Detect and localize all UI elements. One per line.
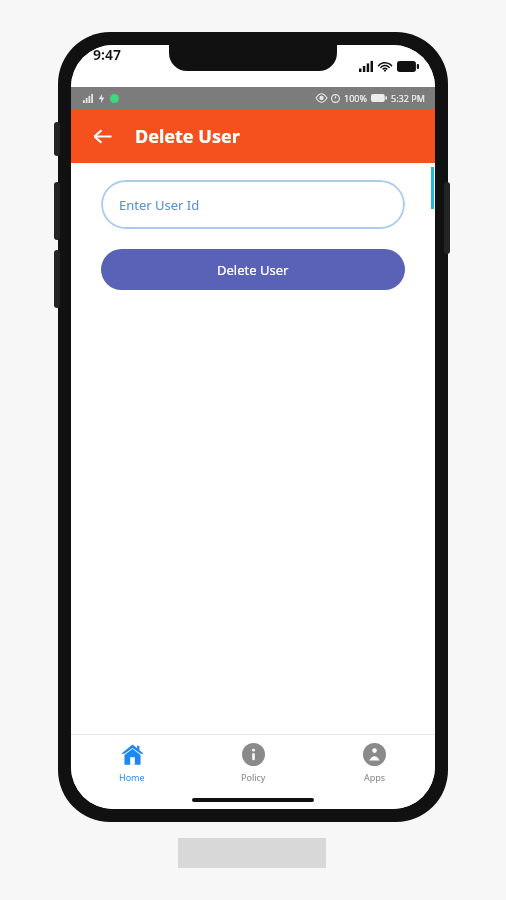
button[interactable]: Apps [314,735,435,791]
staticText: 100% [344,92,367,104]
staticText: Enter User Id [119,196,200,214]
staticText: Apps [364,771,386,783]
button[interactable]: Delete User [101,249,405,290]
button[interactable]: Enter User Id [101,180,405,229]
staticText: Delete User [217,261,289,279]
button[interactable]: Policy [193,735,314,791]
staticText: Policy [241,771,266,783]
button[interactable]: Back [83,117,121,155]
button[interactable]: Home [71,735,193,791]
staticText: 5:32 PM [391,92,425,104]
staticText: 9:47 [93,45,121,64]
staticText: Delete User [135,124,240,149]
staticText: Home [119,771,145,783]
